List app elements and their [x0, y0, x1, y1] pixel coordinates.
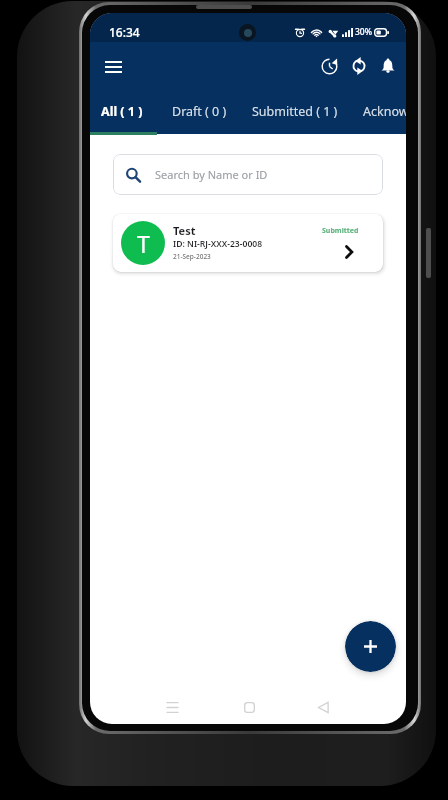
button[interactable]: History [315, 52, 343, 80]
staticText: Draft ( 0 ) [172, 103, 227, 120]
button[interactable]: Home [233, 691, 265, 723]
staticText: 30% [355, 26, 372, 38]
staticText: ID: NI-RJ-XXX-23-0008 [173, 238, 263, 250]
staticText: Search by Name or ID [155, 167, 268, 182]
button[interactable]: Menu [97, 51, 129, 83]
button[interactable]: Sync [345, 52, 373, 80]
staticText: Submitted ( 1 ) [252, 103, 338, 120]
staticText: Submitted [322, 226, 359, 236]
button[interactable]: Draft ( 0 ) [157, 97, 240, 134]
button[interactable]: T [113, 214, 383, 272]
button[interactable]: Notifications [374, 52, 402, 80]
button[interactable]: Add [345, 621, 396, 672]
button[interactable]: Back [307, 691, 339, 723]
staticText: Acknow [363, 103, 406, 120]
button[interactable]: All ( 1 ) [90, 97, 157, 134]
staticText: 21-Sep-2023 [173, 252, 211, 261]
staticText: T [137, 228, 150, 259]
button[interactable]: Submitted ( 1 ) [240, 97, 352, 134]
staticText: Test [173, 223, 196, 238]
staticText: All ( 1 ) [101, 103, 143, 120]
button[interactable]: Acknow [352, 97, 406, 134]
button[interactable]: Search by Name or ID [113, 154, 383, 195]
staticText: 16:34 [109, 24, 140, 40]
button[interactable]: Recents [156, 691, 188, 723]
